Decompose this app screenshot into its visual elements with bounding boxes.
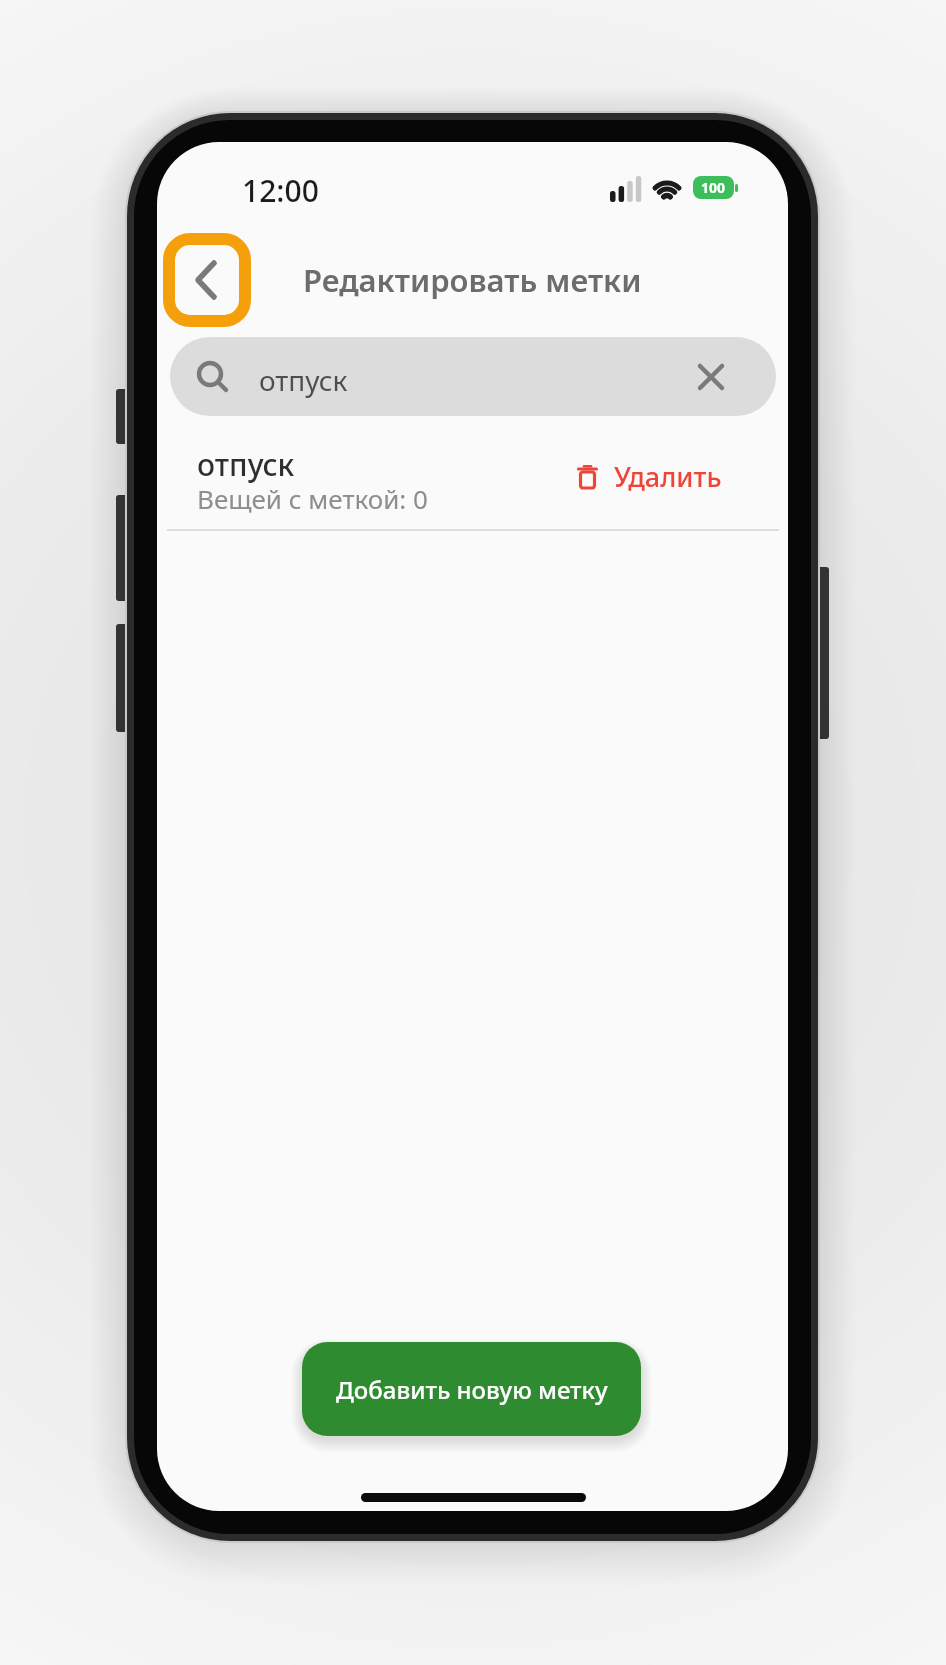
- staticText: Добавить новую метку: [336, 1373, 608, 1406]
- button[interactable]: отпуск: [170, 337, 776, 416]
- button[interactable]: Добавить новую метку: [302, 1342, 641, 1436]
- button[interactable]: Удалить: [578, 458, 722, 495]
- staticText: отпуск: [259, 361, 348, 399]
- staticText: Удалить: [614, 458, 722, 495]
- staticText: 100: [701, 178, 726, 197]
- button[interactable]: [163, 233, 251, 327]
- button[interactable]: отпуск: [157, 442, 788, 532]
- staticText: Редактировать метки: [303, 259, 642, 301]
- staticText: 12:00: [242, 170, 319, 211]
- staticText: Вещей с меткой: 0: [197, 481, 428, 516]
- staticText: отпуск: [197, 444, 295, 485]
